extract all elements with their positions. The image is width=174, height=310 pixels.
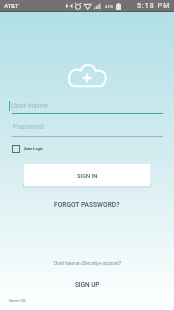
button[interactable]: SIGN UP <box>0 279 174 291</box>
other: iSecurity cloud logo <box>66 62 108 89</box>
staticText: FORGOT PASSWORD? <box>54 201 120 209</box>
staticText: Don't have an iSecurity+ account? <box>54 260 121 266</box>
button[interactable]: FORGOT PASSWORD? <box>0 199 174 210</box>
staticText: 5:18 PM <box>137 2 171 10</box>
button[interactable]: Server US <box>9 298 26 303</box>
staticText: AT&T <box>4 2 19 9</box>
staticText: SIGN UP <box>75 281 100 289</box>
staticText: 41% <box>105 4 114 9</box>
staticText: User Name <box>11 101 49 110</box>
staticText: Server US <box>9 298 26 303</box>
staticText: SIGN IN <box>77 173 98 180</box>
button[interactable]: Auto Login <box>12 144 43 153</box>
staticText: Auto Login <box>24 146 43 151</box>
button[interactable]: SIGN IN <box>24 164 150 186</box>
staticText: Password <box>13 123 44 131</box>
